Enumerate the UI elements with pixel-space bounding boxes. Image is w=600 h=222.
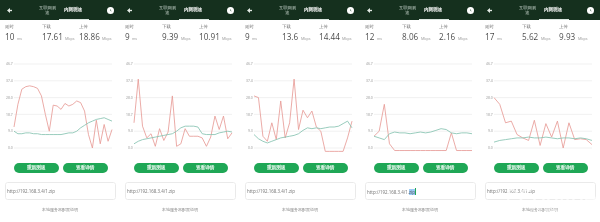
staticText: 9	[125, 31, 130, 42]
staticText: 9	[245, 31, 250, 42]
staticText: 互联网测速	[278, 5, 297, 15]
button[interactable]: 互联网测速	[518, 0, 537, 20]
staticText: 18.7	[246, 112, 253, 117]
staticText: 互联网测速	[38, 5, 57, 15]
button[interactable]: 查看详情	[63, 163, 108, 173]
button[interactable]: 重新测速	[494, 163, 539, 173]
button[interactable]: 内网测速	[63, 0, 83, 20]
button[interactable]: Back	[123, 4, 136, 17]
staticText: 上传	[439, 24, 448, 30]
button[interactable]: 本地服务器配置说明	[282, 207, 318, 212]
button[interactable]: 互联网测速	[38, 0, 57, 20]
button[interactable]: http://192.168.3.4/1.zip	[5, 182, 116, 200]
button[interactable]: Speed test history	[227, 7, 234, 14]
button[interactable]: 内网测速	[303, 0, 323, 20]
staticText: 9.93	[559, 31, 576, 42]
staticText: 9.39	[162, 31, 179, 42]
staticText: ms	[132, 36, 138, 41]
button[interactable]: 查看详情	[543, 163, 588, 173]
staticText: ms	[377, 36, 383, 41]
staticText: 46.7	[126, 61, 133, 66]
staticText: 上传	[199, 24, 208, 30]
button[interactable]: http://192.168.3.4/1.zip	[245, 182, 356, 200]
button[interactable]: Speed test history	[347, 7, 354, 14]
staticText: 18.86	[79, 31, 100, 42]
staticText: http://192.168.3.4/1.zip	[127, 188, 175, 194]
button[interactable]: 内网测速	[423, 0, 443, 20]
button[interactable]: Back	[483, 4, 496, 17]
staticText: 下载	[402, 24, 411, 30]
staticText: 28.0	[246, 95, 253, 100]
staticText: 9.3	[488, 128, 493, 133]
staticText: 28.0	[126, 95, 133, 100]
staticText: 18.7	[126, 112, 133, 117]
staticText: 17.61	[42, 31, 63, 42]
button[interactable]: Speed test history	[107, 7, 114, 14]
staticText: 9.3	[368, 128, 373, 133]
staticText: http://192.168.3.4/1.zip	[487, 188, 535, 194]
button[interactable]: http://192.168.3.4/1.zip	[485, 182, 596, 200]
staticText: 28.0	[6, 95, 13, 100]
staticText: 28.0	[486, 95, 493, 100]
button[interactable]: 本地服务器配置说明	[42, 207, 78, 212]
staticText: Mbps	[102, 36, 112, 41]
staticText: 下载	[522, 24, 531, 30]
staticText: ms	[17, 36, 23, 41]
button[interactable]: 内网测速	[543, 0, 563, 20]
button[interactable]: http://192.168.3.4/1.	[365, 182, 476, 200]
button[interactable]: Back	[3, 4, 16, 17]
button[interactable]: 重新测速	[254, 163, 299, 173]
button[interactable]: http://192.168.3.4/1.zip	[125, 182, 236, 200]
button[interactable]: 本地服务器配置说明	[162, 207, 198, 212]
button[interactable]: 互联网测速	[158, 0, 177, 20]
button[interactable]: 重新测速	[134, 163, 179, 173]
staticText: http://192.168.3.4/1.zip	[7, 188, 55, 194]
staticText: 0.0	[248, 145, 253, 150]
button[interactable]: Back	[363, 4, 376, 17]
staticText: 查看详情	[76, 165, 95, 171]
staticText: Mbps	[421, 36, 431, 41]
staticText: ms	[252, 36, 258, 41]
button[interactable]: 互联网测速	[398, 0, 417, 20]
staticText: Mbps	[181, 36, 191, 41]
button[interactable]: Back	[243, 4, 256, 17]
staticText: 0.0	[488, 145, 493, 150]
staticText: 内网测速	[64, 7, 82, 13]
button[interactable]: 内网测速	[183, 0, 203, 20]
staticText: 18.7	[6, 112, 13, 117]
staticText: 重新测速	[387, 165, 406, 171]
staticText: Mbps	[301, 36, 311, 41]
button[interactable]: 查看详情	[423, 163, 468, 173]
staticText: 内网测速	[544, 7, 562, 13]
staticText: 查看详情	[436, 165, 455, 171]
staticText: 延时	[5, 24, 14, 30]
button[interactable]: Speed test history	[467, 7, 474, 14]
button[interactable]: 查看详情	[303, 163, 348, 173]
button[interactable]: 互联网测速	[278, 0, 297, 20]
staticText: 9.3	[8, 128, 13, 133]
staticText: 0.0	[8, 145, 13, 150]
staticText: 上传	[319, 24, 328, 30]
staticText: 10	[5, 31, 15, 42]
staticText: 上传	[79, 24, 88, 30]
button[interactable]: Speed test history	[587, 7, 594, 14]
staticText: 28.0	[366, 95, 373, 100]
button[interactable]: 本地服务器配置说明	[402, 207, 438, 212]
staticText: 18.7	[366, 112, 373, 117]
staticText: 0.0	[128, 145, 133, 150]
staticText: 内网测速	[424, 7, 442, 13]
staticText: zip	[409, 189, 415, 195]
staticText: 延时	[245, 24, 254, 30]
button[interactable]: 重新测速	[374, 163, 419, 173]
staticText: 17	[485, 31, 495, 42]
staticText: 0.0	[368, 145, 373, 150]
staticText: 重新测速	[507, 165, 526, 171]
staticText: 延时	[485, 24, 494, 30]
staticText: 37.4	[366, 78, 373, 83]
staticText: 互联网测速	[398, 5, 417, 15]
button[interactable]: 查看详情	[183, 163, 228, 173]
button[interactable]: 本地服务器配置说明	[522, 207, 558, 212]
staticText: ms	[497, 36, 503, 41]
staticText: 太平洋电脑网	[529, 206, 573, 214]
button[interactable]: 重新测速	[14, 163, 59, 173]
